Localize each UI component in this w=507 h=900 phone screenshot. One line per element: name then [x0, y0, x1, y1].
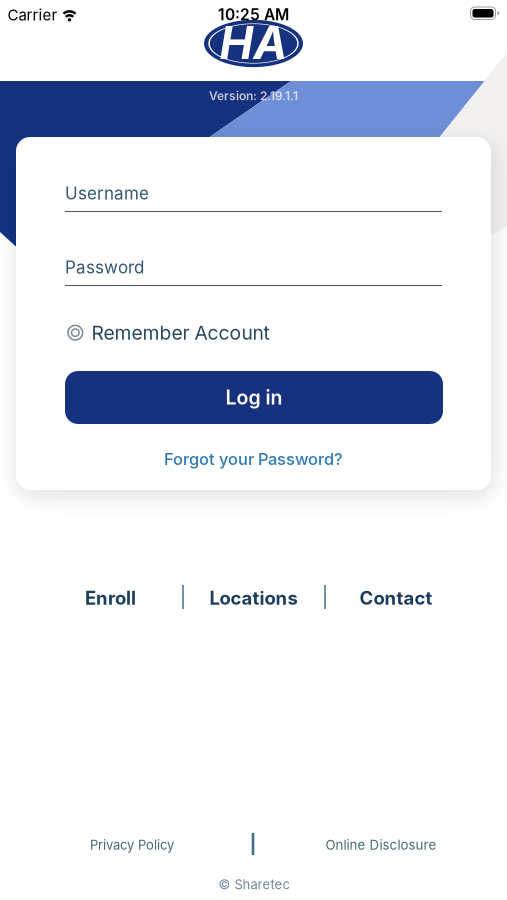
staticText: Locations — [209, 587, 297, 609]
staticText: © Sharetec — [218, 877, 289, 892]
staticText: Carrier — [7, 6, 57, 24]
button[interactable]: Locations — [209, 587, 297, 609]
button[interactable]: Contact — [359, 587, 432, 609]
staticText: Version: 2.19.1.1 — [209, 89, 298, 103]
staticText: Online Disclosure — [325, 837, 436, 853]
staticText: Contact — [359, 587, 432, 609]
staticText: Enroll — [85, 587, 136, 609]
button[interactable]: Username — [0, 0, 377, 21]
button[interactable]: Log in — [65, 371, 443, 424]
button[interactable]: Privacy Policy — [90, 837, 174, 853]
staticText: Forgot your Password? — [164, 449, 343, 469]
staticText: Log in — [225, 386, 282, 409]
button[interactable]: Online Disclosure — [325, 837, 436, 853]
staticText: Privacy Policy — [90, 837, 174, 853]
staticText: Remember Account — [92, 321, 270, 344]
staticText: Username — [65, 183, 149, 204]
staticText: 10:25 AM — [218, 5, 289, 24]
staticText: HA — [219, 15, 287, 70]
staticText: Password — [65, 257, 144, 278]
button[interactable]: Forgot your Password? — [164, 449, 343, 469]
button[interactable]: Password — [0, 0, 377, 21]
button[interactable]: Remember Account — [0, 0, 202, 23]
button[interactable]: Enroll — [85, 587, 136, 609]
